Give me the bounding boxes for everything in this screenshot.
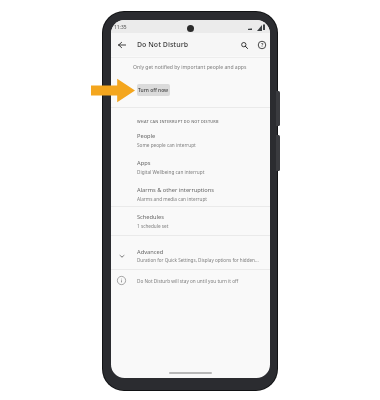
button[interactable]: Turn off now bbox=[137, 84, 170, 96]
staticText: Some people can interrupt bbox=[137, 142, 196, 148]
button[interactable]: Schedules bbox=[111, 210, 270, 237]
staticText: Schedules bbox=[137, 213, 164, 221]
staticText: 1 schedule set bbox=[137, 223, 169, 229]
staticText: WHAT CAN INTERRUPT DO NOT DISTURB bbox=[137, 119, 219, 124]
staticText: Do Not Disturb bbox=[137, 40, 189, 50]
staticText: Duration for Quick Settings, Display opt… bbox=[137, 257, 259, 263]
staticText: 11:35 bbox=[114, 24, 127, 31]
staticText: Advanced bbox=[137, 248, 164, 256]
staticText: Alarms & other interruptions bbox=[137, 186, 215, 194]
button[interactable]: Help bbox=[256, 39, 268, 51]
button[interactable]: Alarms & other interruptions bbox=[111, 183, 270, 210]
staticText: Apps bbox=[137, 159, 151, 167]
staticText: Do Not Disturb will stay on until you tu… bbox=[137, 278, 239, 284]
staticText: ? bbox=[261, 42, 264, 49]
staticText: Only get notified by important people an… bbox=[133, 64, 247, 71]
button[interactable]: Apps bbox=[111, 156, 270, 183]
staticText: Turn off now bbox=[138, 87, 169, 94]
button[interactable]: Advanced bbox=[111, 242, 270, 268]
button[interactable]: Search bbox=[238, 39, 250, 51]
staticText: Digital Wellbeing can interrupt bbox=[137, 169, 205, 175]
button[interactable]: Back bbox=[116, 39, 128, 51]
button[interactable]: People bbox=[111, 129, 270, 156]
staticText: People bbox=[137, 132, 156, 140]
staticText: Alarms and media can interrupt bbox=[137, 196, 207, 202]
